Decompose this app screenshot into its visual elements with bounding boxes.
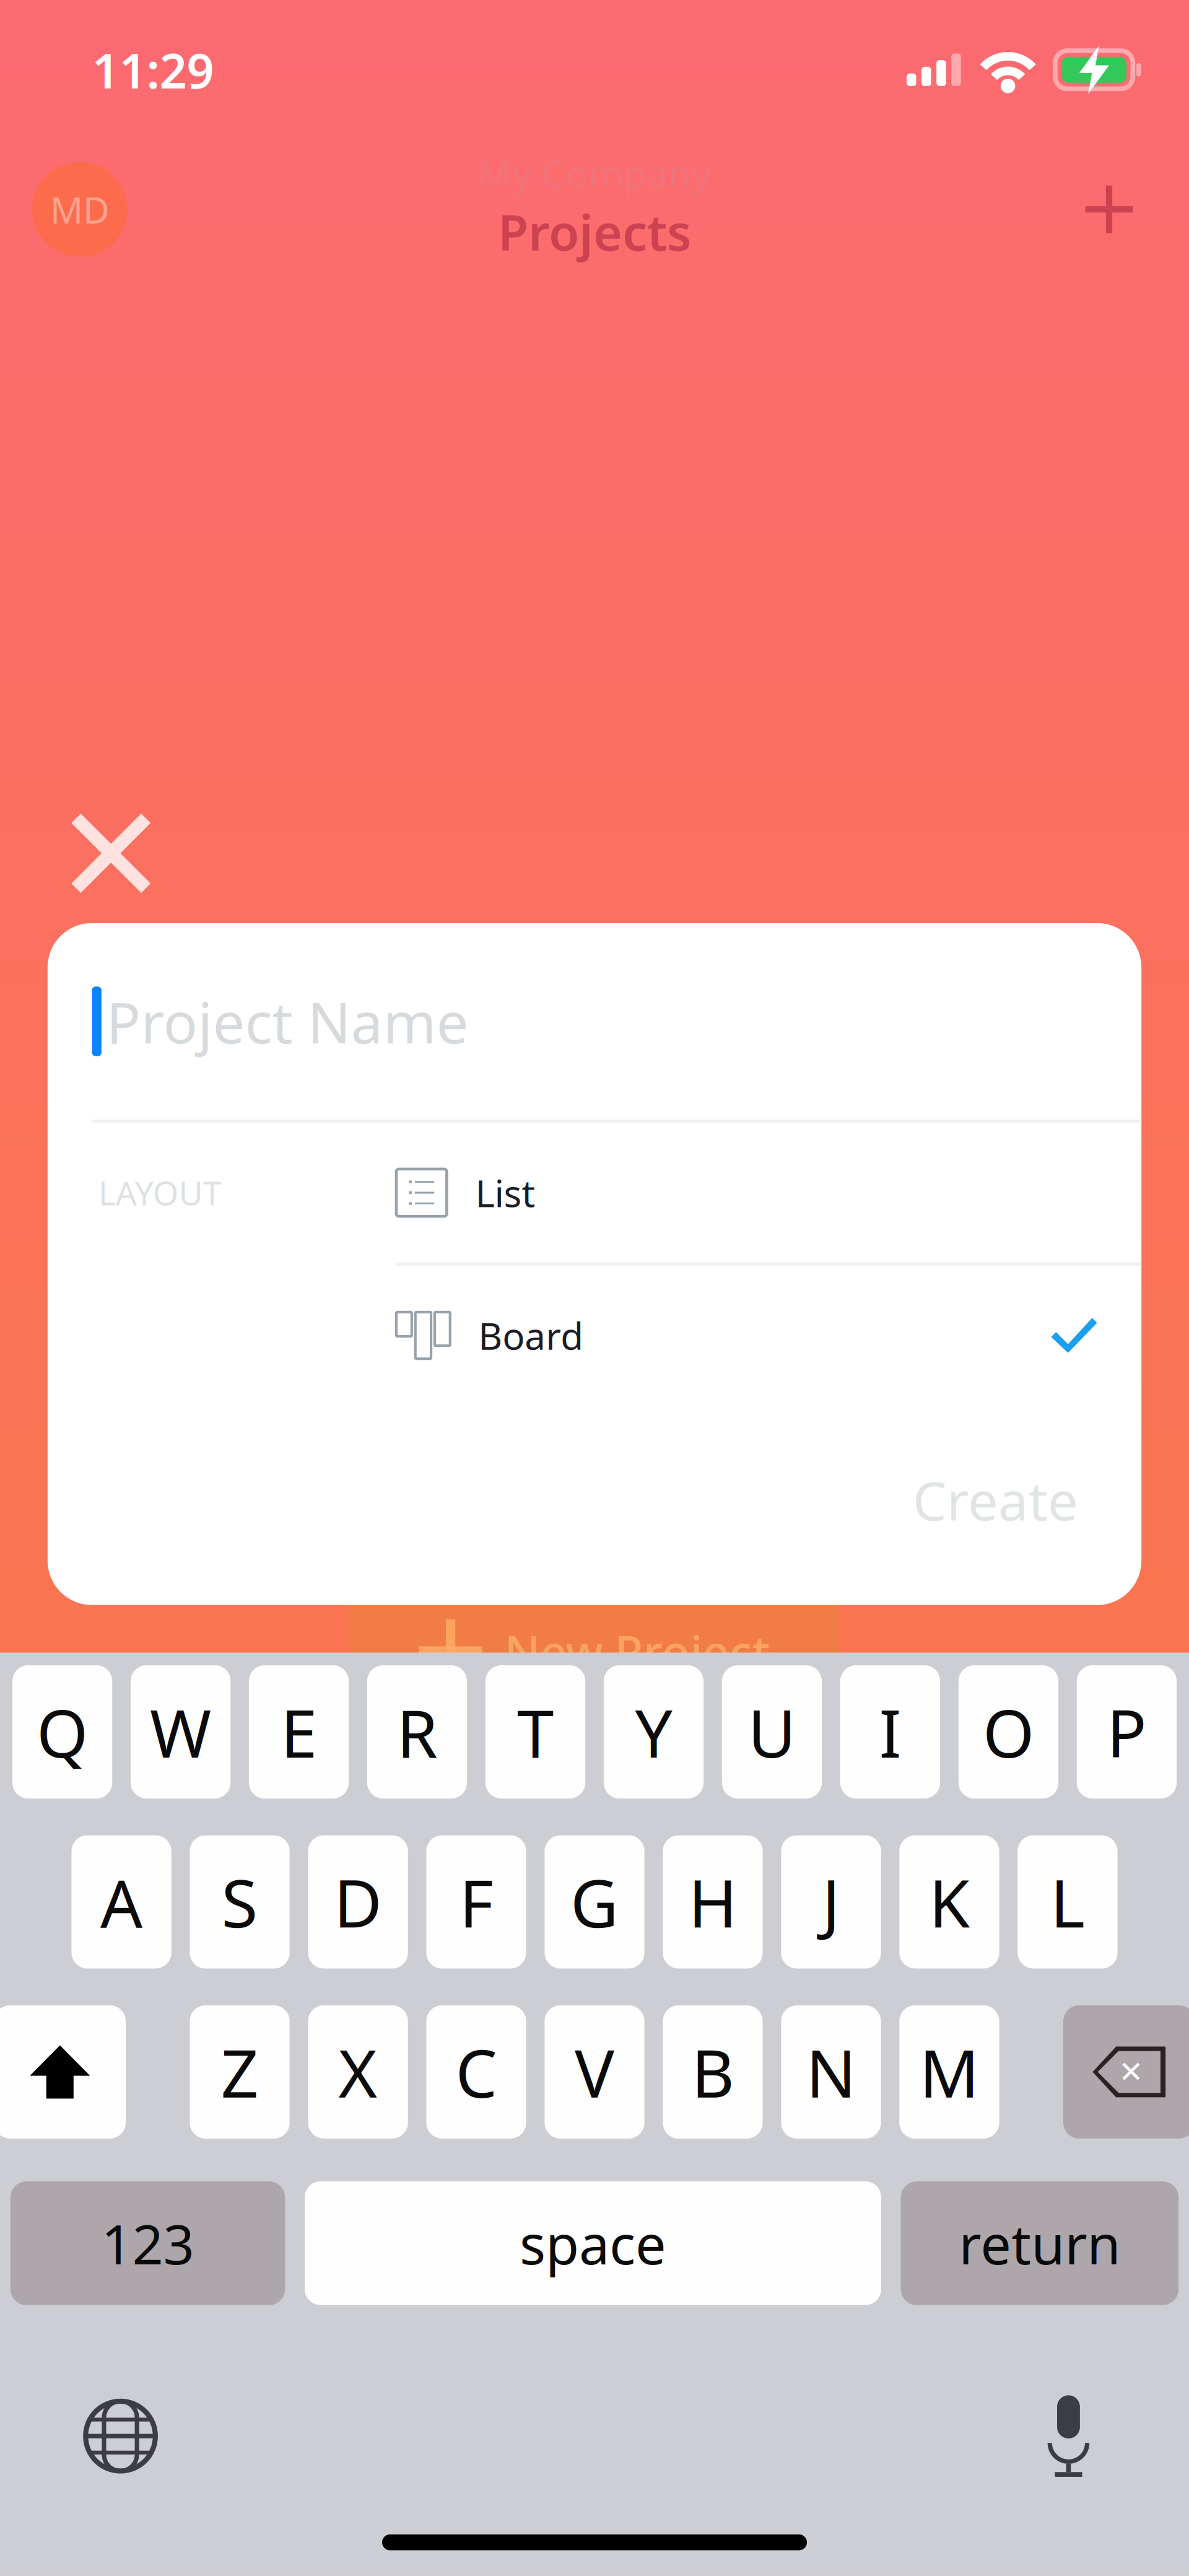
button[interactable]: E	[249, 1665, 349, 1798]
staticText: U	[748, 1688, 796, 1776]
button[interactable]: List	[396, 1123, 1141, 1262]
button[interactable]: I	[840, 1665, 940, 1798]
staticText: O	[983, 1688, 1034, 1776]
button[interactable]: U	[722, 1665, 822, 1798]
staticText: I	[879, 1688, 901, 1776]
staticText: F	[459, 1858, 493, 1946]
staticText: ✕	[1119, 2055, 1143, 2089]
button[interactable]: K	[899, 1835, 999, 1968]
button[interactable]: Dictation	[999, 2373, 1138, 2500]
staticText: Create	[913, 1464, 1078, 1535]
staticText: My Company	[478, 148, 711, 198]
staticText: List	[475, 1168, 535, 1217]
button[interactable]: Create	[913, 1445, 1141, 1554]
staticText: B	[691, 2028, 734, 2116]
button[interactable]: L	[1018, 1835, 1118, 1968]
button[interactable]: C	[426, 2005, 526, 2139]
button[interactable]: Delete	[1063, 2005, 1189, 2139]
staticText: L	[1050, 1858, 1085, 1946]
button[interactable]: F	[426, 1835, 526, 1968]
button[interactable]: Board	[396, 1266, 1141, 1405]
staticText: X	[338, 2028, 377, 2116]
button[interactable]: Y	[604, 1665, 704, 1798]
button[interactable]: return	[901, 2181, 1179, 2305]
button[interactable]: G	[545, 1835, 644, 1968]
button[interactable]: W	[131, 1665, 230, 1798]
staticText: N	[806, 2028, 856, 2116]
button[interactable]: Close	[41, 783, 181, 923]
button[interactable]: R	[367, 1665, 467, 1798]
button[interactable]: N	[781, 2005, 881, 2139]
button[interactable]: H	[663, 1835, 763, 1968]
staticText: D	[334, 1858, 382, 1946]
staticText: Y	[635, 1688, 672, 1776]
staticText: A	[100, 1858, 142, 1946]
button[interactable]: Z	[190, 2005, 290, 2139]
button[interactable]: J	[781, 1835, 881, 1968]
staticText: W	[150, 1688, 211, 1776]
button[interactable]: D	[308, 1835, 408, 1968]
button[interactable]: O	[959, 1665, 1058, 1798]
staticText: Project Name	[106, 984, 468, 1059]
button[interactable]: Q	[12, 1665, 112, 1798]
staticText: 11:29	[92, 38, 214, 102]
button[interactable]: A	[72, 1835, 171, 1968]
button[interactable]: space	[305, 2181, 881, 2305]
button[interactable]: X	[308, 2005, 408, 2139]
button[interactable]: M	[899, 2005, 999, 2139]
staticText: H	[688, 1858, 737, 1946]
staticText: New Project	[504, 1620, 770, 1682]
staticText: S	[221, 1858, 258, 1946]
button[interactable]: Account	[10, 140, 150, 279]
button[interactable]: Shift	[0, 2005, 126, 2139]
button[interactable]: New Project	[349, 1589, 840, 1713]
staticText: MD	[50, 185, 110, 234]
staticText: E	[281, 1688, 317, 1776]
button[interactable]: V	[545, 2005, 644, 2139]
staticText: V	[575, 2028, 614, 2116]
staticText: J	[822, 1858, 840, 1946]
button[interactable]: S	[190, 1835, 290, 1968]
staticText: Z	[221, 2028, 259, 2116]
staticText: space	[520, 2207, 666, 2279]
staticText: T	[517, 1688, 554, 1776]
staticText: return	[959, 2207, 1120, 2279]
button[interactable]: 123	[10, 2181, 285, 2305]
staticText: LAYOUT	[98, 1170, 222, 1214]
staticText: R	[397, 1688, 438, 1776]
staticText: Projects	[498, 198, 691, 264]
button[interactable]: P	[1077, 1665, 1177, 1798]
staticText: P	[1107, 1688, 1147, 1776]
staticText: Q	[37, 1688, 88, 1776]
button[interactable]: Switch keyboard	[51, 2373, 190, 2500]
button[interactable]: B	[663, 2005, 763, 2139]
staticText: K	[929, 1858, 970, 1946]
button[interactable]: New project	[1039, 140, 1179, 279]
staticText: M	[919, 2028, 979, 2116]
staticText: G	[570, 1858, 619, 1946]
staticText: 123	[101, 2207, 194, 2279]
button[interactable]: T	[485, 1665, 585, 1798]
staticText: Board	[478, 1311, 584, 1360]
staticText: C	[455, 2028, 497, 2116]
